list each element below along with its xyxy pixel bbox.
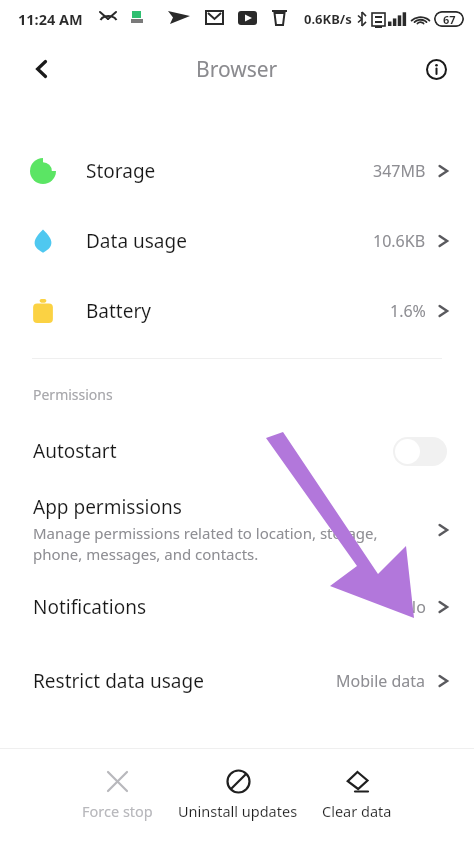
button[interactable]: Force stop — [78, 763, 157, 827]
staticText: Storage — [86, 158, 156, 184]
staticText: Permissions — [33, 385, 113, 404]
button[interactable]: Back — [22, 49, 62, 89]
button[interactable]: Battery — [0, 276, 474, 346]
staticText: 10.6KB — [373, 230, 426, 252]
staticText: Clear data — [322, 801, 392, 821]
staticText: Data usage — [86, 228, 187, 254]
button[interactable]: App info — [416, 49, 456, 89]
staticText: App permissions — [33, 494, 182, 520]
staticText: Restrict data usage — [33, 668, 204, 694]
staticText: Mobile data — [336, 670, 426, 692]
button[interactable]: Data usage — [0, 206, 474, 276]
staticText: Uninstall updates — [178, 801, 298, 821]
staticText: Force stop — [82, 801, 153, 821]
staticText: No — [404, 596, 426, 618]
button[interactable]: Storage — [0, 136, 474, 206]
button[interactable]: Clear data — [318, 763, 396, 827]
button[interactable]: App permissions — [0, 480, 474, 579]
staticText: Manage permissions related to location, … — [33, 523, 378, 565]
staticText: 1.6% — [390, 300, 426, 322]
staticText: Notifications — [33, 594, 147, 620]
staticText: Battery — [86, 298, 151, 324]
button[interactable]: Autostart — [0, 422, 474, 480]
button[interactable]: Restrict data usage — [0, 653, 474, 709]
button[interactable]: Uninstall updates — [174, 763, 302, 827]
staticText: 0.6KB/s — [304, 10, 352, 28]
staticText: 347MB — [373, 160, 426, 182]
staticText: 11:24 AM — [18, 9, 83, 29]
staticText: Browser — [196, 55, 278, 84]
button[interactable]: Notifications — [0, 579, 474, 635]
staticText: 67 — [443, 12, 456, 27]
staticText: Autostart — [33, 438, 117, 464]
